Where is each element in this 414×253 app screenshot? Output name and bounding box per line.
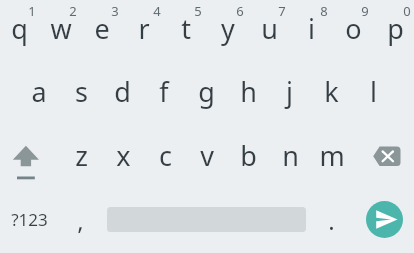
staticText: ?123	[11, 208, 48, 231]
button[interactable]	[41, 0, 82, 63]
staticText: a	[31, 73, 47, 110]
staticText: 8	[320, 2, 328, 20]
button[interactable]: Symbols	[0, 190, 58, 253]
staticText: p	[387, 10, 404, 47]
staticText: 5	[194, 2, 202, 20]
staticText: 2	[69, 2, 77, 20]
button[interactable]	[227, 127, 269, 190]
staticText: 6	[236, 2, 244, 20]
button[interactable]	[83, 0, 124, 63]
button[interactable]	[373, 0, 414, 63]
staticText: y	[221, 10, 235, 47]
button[interactable]	[331, 0, 372, 63]
button[interactable]	[207, 0, 248, 63]
staticText: 0	[403, 2, 411, 20]
button[interactable]	[102, 63, 144, 126]
staticText: o	[345, 10, 362, 47]
button[interactable]	[352, 63, 394, 126]
button[interactable]	[186, 127, 228, 190]
button[interactable]	[227, 63, 269, 126]
staticText: j	[286, 73, 293, 110]
staticText: w	[50, 10, 72, 47]
staticText: 9	[361, 2, 369, 20]
staticText: 7	[278, 2, 286, 20]
button[interactable]	[144, 127, 186, 190]
staticText: z	[75, 137, 88, 174]
staticText: v	[200, 137, 214, 174]
staticText: q	[11, 10, 28, 47]
staticText: h	[240, 73, 257, 110]
staticText: 3	[111, 2, 119, 20]
staticText: 4	[153, 2, 161, 20]
button[interactable]: Comma	[60, 190, 102, 253]
button[interactable]	[166, 0, 207, 63]
button[interactable]: Backspace	[352, 127, 414, 190]
button[interactable]	[268, 63, 310, 126]
button[interactable]	[18, 63, 60, 126]
staticText: ,	[77, 204, 84, 237]
staticText: u	[261, 10, 278, 47]
staticText: 1	[28, 2, 36, 20]
staticText: t	[181, 10, 191, 47]
staticText: b	[240, 137, 257, 174]
staticText: g	[198, 73, 215, 110]
staticText: k	[324, 73, 339, 110]
button[interactable]: Period	[312, 190, 352, 253]
button[interactable]	[310, 63, 352, 126]
staticText: x	[116, 137, 131, 174]
button[interactable]	[185, 63, 227, 126]
staticText: f	[159, 73, 169, 110]
button[interactable]: Shift	[0, 127, 62, 190]
button[interactable]	[0, 0, 41, 63]
button[interactable]	[143, 63, 185, 126]
button[interactable]: Send	[366, 201, 403, 238]
staticText: n	[282, 137, 299, 174]
button[interactable]	[269, 127, 311, 190]
button[interactable]	[60, 127, 102, 190]
button[interactable]	[311, 127, 353, 190]
button[interactable]	[102, 127, 144, 190]
staticText: i	[308, 10, 315, 47]
button[interactable]	[290, 0, 331, 63]
staticText: d	[114, 73, 131, 110]
button[interactable]	[124, 0, 165, 63]
button[interactable]	[60, 63, 102, 126]
staticText: l	[370, 73, 377, 110]
staticText: .	[328, 204, 335, 237]
button[interactable]	[248, 0, 289, 63]
staticText: c	[159, 137, 172, 174]
staticText: s	[75, 73, 88, 110]
staticText: m	[319, 137, 345, 174]
staticText: r	[138, 10, 150, 47]
staticText: e	[94, 10, 110, 47]
